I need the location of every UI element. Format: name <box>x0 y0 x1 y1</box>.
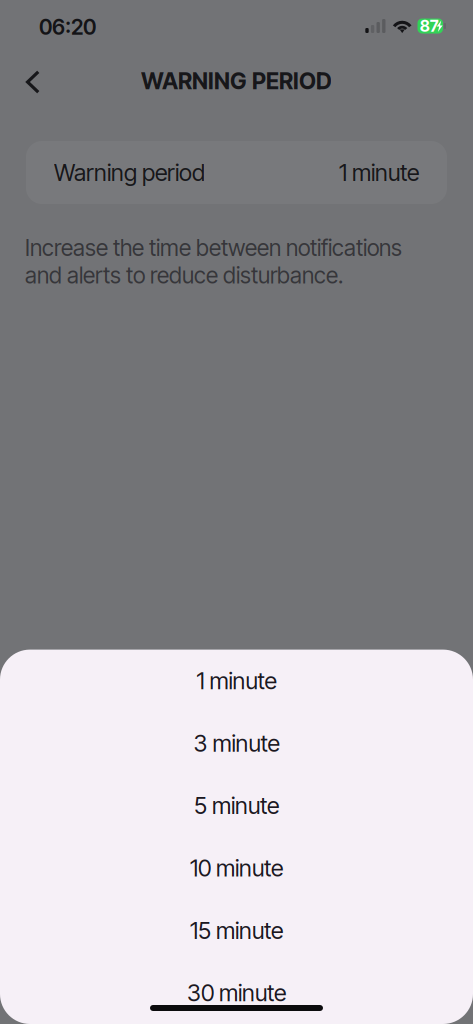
button[interactable]: Back <box>8 58 54 104</box>
staticText: 15 minute <box>190 916 283 944</box>
staticText: 5 minute <box>194 791 279 820</box>
staticText: 87 <box>420 16 439 36</box>
staticText: Warning period <box>54 158 205 187</box>
staticText: 3 minute <box>193 729 279 757</box>
button[interactable]: 5 minute <box>0 774 473 837</box>
staticText: 1 minute <box>339 158 419 187</box>
button[interactable]: 30 minute <box>0 962 473 1024</box>
button[interactable]: 10 minute <box>0 837 473 899</box>
staticText: 06:20 <box>39 14 96 40</box>
staticText: 10 minute <box>190 854 283 882</box>
button[interactable]: 1 minute <box>0 650 473 712</box>
staticText: WARNING PERIOD <box>141 67 332 95</box>
staticText: Increase the time between notifications … <box>25 234 402 289</box>
staticText: 1 minute <box>196 667 276 695</box>
staticText: 30 minute <box>187 979 286 1007</box>
button[interactable]: 3 minute <box>0 712 473 774</box>
button[interactable]: 15 minute <box>0 899 473 962</box>
button[interactable]: Warning period <box>26 141 447 204</box>
